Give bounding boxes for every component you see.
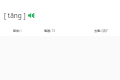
staticText: [ tāng ] [4,11,26,20]
staticText: 笔画: 13 [44,29,56,33]
button[interactable]: Play pronunciation [28,13,34,18]
staticText: 五笔: IJAJF [94,29,108,33]
staticText: 部首: 氵 [13,29,24,33]
